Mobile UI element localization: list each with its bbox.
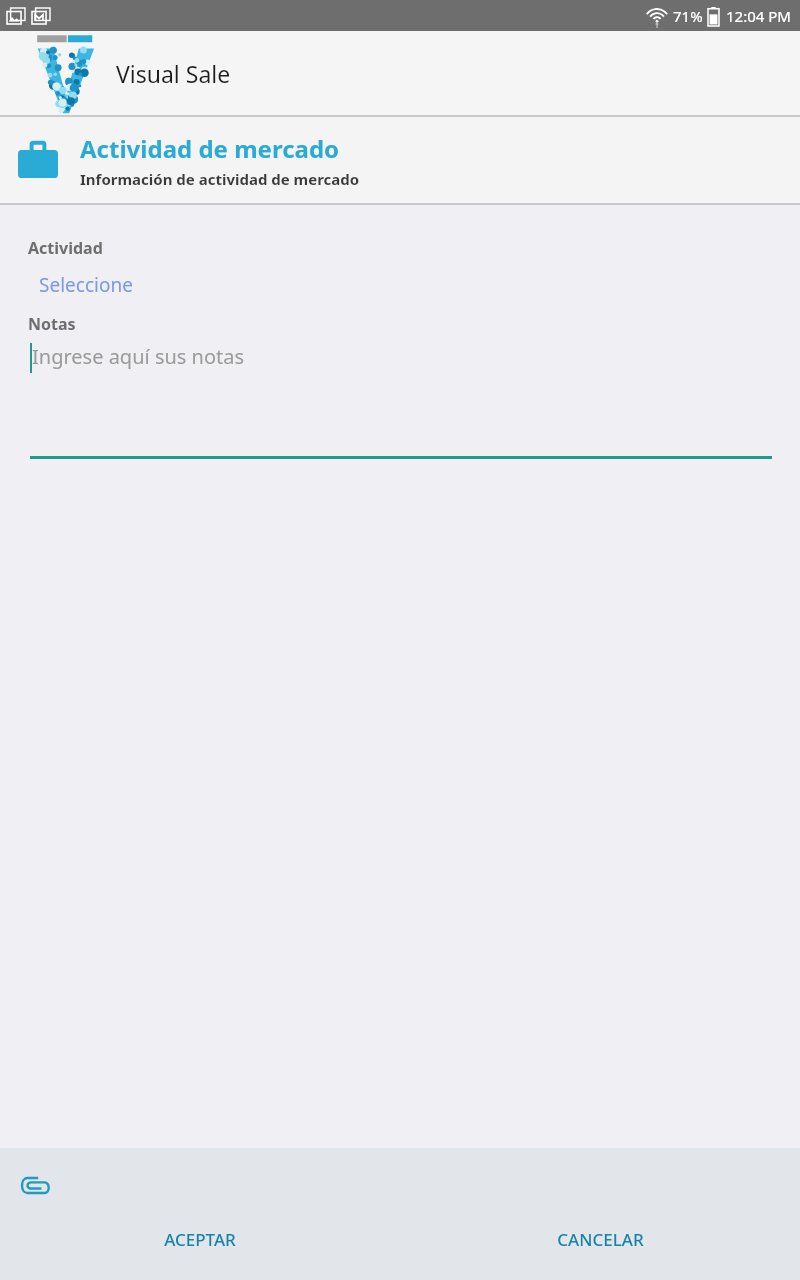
staticText: Actividad xyxy=(28,237,103,259)
button[interactable]: Ingrese aquí sus notas xyxy=(30,343,772,459)
staticText: Información de actividad de mercado xyxy=(80,169,360,189)
staticText: 71% xyxy=(673,6,703,26)
staticText: Seleccione xyxy=(39,272,133,298)
staticText: Visual Sale xyxy=(116,58,231,89)
button[interactable]: CANCELAR xyxy=(400,1210,800,1268)
staticText: 12:04 PM xyxy=(726,6,791,26)
button[interactable]: Seleccione xyxy=(30,269,142,301)
button[interactable]: ACEPTAR xyxy=(0,1210,400,1268)
staticText: ACEPTAR xyxy=(164,1228,236,1251)
staticText: Ingrese aquí sus notas xyxy=(32,343,245,370)
staticText: Notas xyxy=(28,313,76,335)
button[interactable]: Adjuntar archivo xyxy=(12,1166,58,1204)
staticText: CANCELAR xyxy=(557,1228,644,1251)
staticText: Actividad de mercado xyxy=(80,132,340,165)
